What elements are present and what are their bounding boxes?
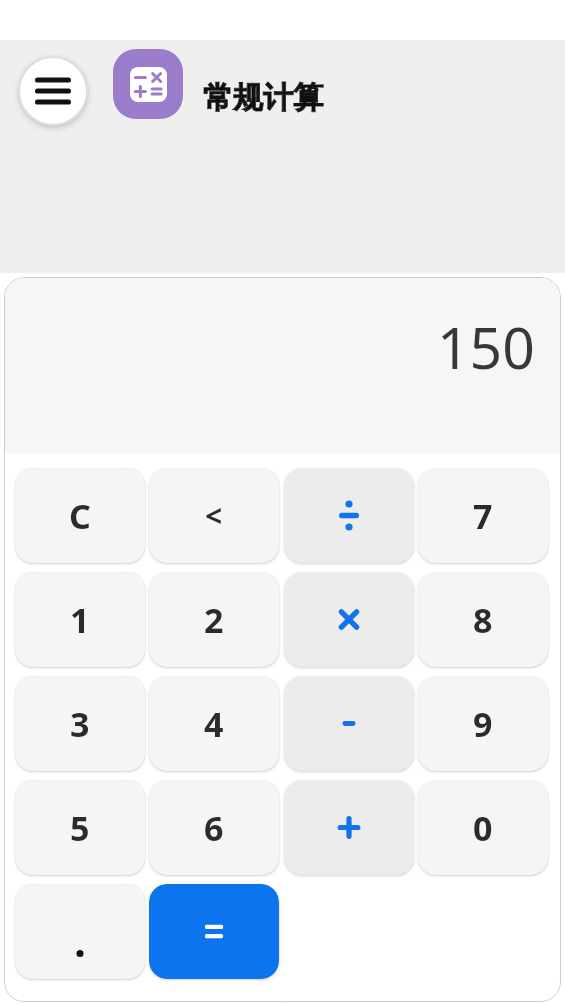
staticText: 150	[437, 308, 535, 386]
staticText: 8	[473, 597, 493, 643]
staticText: 1	[70, 597, 90, 643]
staticText: 常规计算	[203, 79, 323, 117]
staticText: 0	[473, 805, 493, 851]
staticText: 3	[70, 701, 90, 747]
staticText: <	[205, 495, 223, 536]
staticText: 6	[204, 805, 224, 851]
staticText: 7	[473, 493, 493, 539]
staticText: 常规计算	[203, 79, 323, 117]
staticText: C	[69, 493, 91, 539]
staticText: 5	[70, 805, 90, 851]
staticText: 4	[204, 701, 224, 747]
staticText: 9	[473, 701, 493, 747]
staticText: 2	[204, 597, 224, 643]
